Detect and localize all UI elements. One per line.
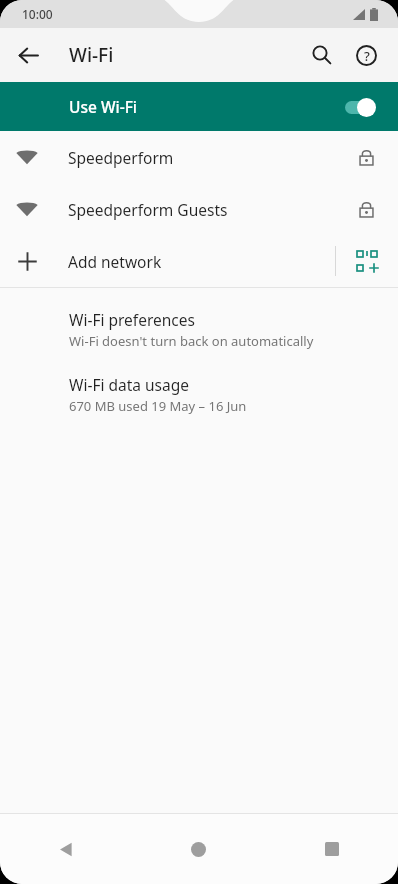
button[interactable]: Speedperform Guests <box>0 183 398 235</box>
button[interactable]: Speedperform <box>0 131 398 183</box>
staticText: Wi-Fi data usage <box>69 374 190 395</box>
staticText: Add network <box>68 251 162 272</box>
button[interactable]: Back <box>0 814 132 884</box>
staticText: Use Wi-Fi <box>69 96 138 117</box>
staticText: 10:00 <box>22 6 53 22</box>
button[interactable]: Wi-Fi preferences <box>0 298 398 363</box>
staticText: ? <box>364 47 370 65</box>
staticText: Wi-Fi doesn't turn back on automatically <box>69 332 314 350</box>
staticText: 670 MB used 19 May – 16 Jun <box>69 397 247 415</box>
staticText: Wi-Fi <box>69 42 114 68</box>
button[interactable]: Wi-Fi data usage <box>0 363 398 428</box>
staticText: Speedperform <box>68 147 174 168</box>
button[interactable]: Recent apps <box>265 814 398 884</box>
button[interactable]: Home <box>132 814 265 884</box>
button[interactable]: Back <box>8 35 48 75</box>
button[interactable]: Search <box>300 33 344 77</box>
staticText: Wi-Fi preferences <box>69 309 195 330</box>
staticText: Speedperform Guests <box>68 199 228 220</box>
button[interactable]: Use Wi-Fi <box>0 82 398 131</box>
button[interactable]: Add network <box>0 235 335 287</box>
button[interactable]: Scan QR code <box>336 235 398 287</box>
button[interactable]: Help <box>344 33 388 77</box>
